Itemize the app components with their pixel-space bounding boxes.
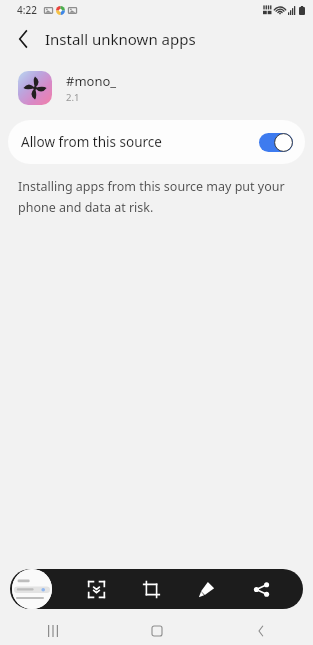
button[interactable]: Screenshot preview — [12, 569, 52, 609]
staticText: #mono_ — [66, 72, 117, 90]
button[interactable]: Allow from this source — [8, 120, 305, 164]
staticText: 2.1 — [66, 91, 80, 104]
button[interactable]: Draw — [189, 572, 223, 606]
button[interactable]: Recents — [0, 617, 105, 645]
staticText: Installing apps from this source may put… — [18, 178, 285, 195]
staticText: 4:22 — [17, 3, 37, 17]
staticText: Allow from this source — [21, 133, 162, 151]
button[interactable]: Back — [6, 22, 40, 56]
button[interactable]: Scroll capture — [79, 572, 113, 606]
button[interactable]: #mono_ — [0, 64, 313, 112]
button[interactable]: Back — [209, 617, 313, 645]
staticText: phone and data at risk. — [18, 199, 154, 216]
button[interactable]: Crop — [134, 572, 168, 606]
button[interactable]: Home — [105, 617, 209, 645]
staticText: Install unknown apps — [45, 29, 196, 49]
button[interactable]: Share — [244, 572, 278, 606]
